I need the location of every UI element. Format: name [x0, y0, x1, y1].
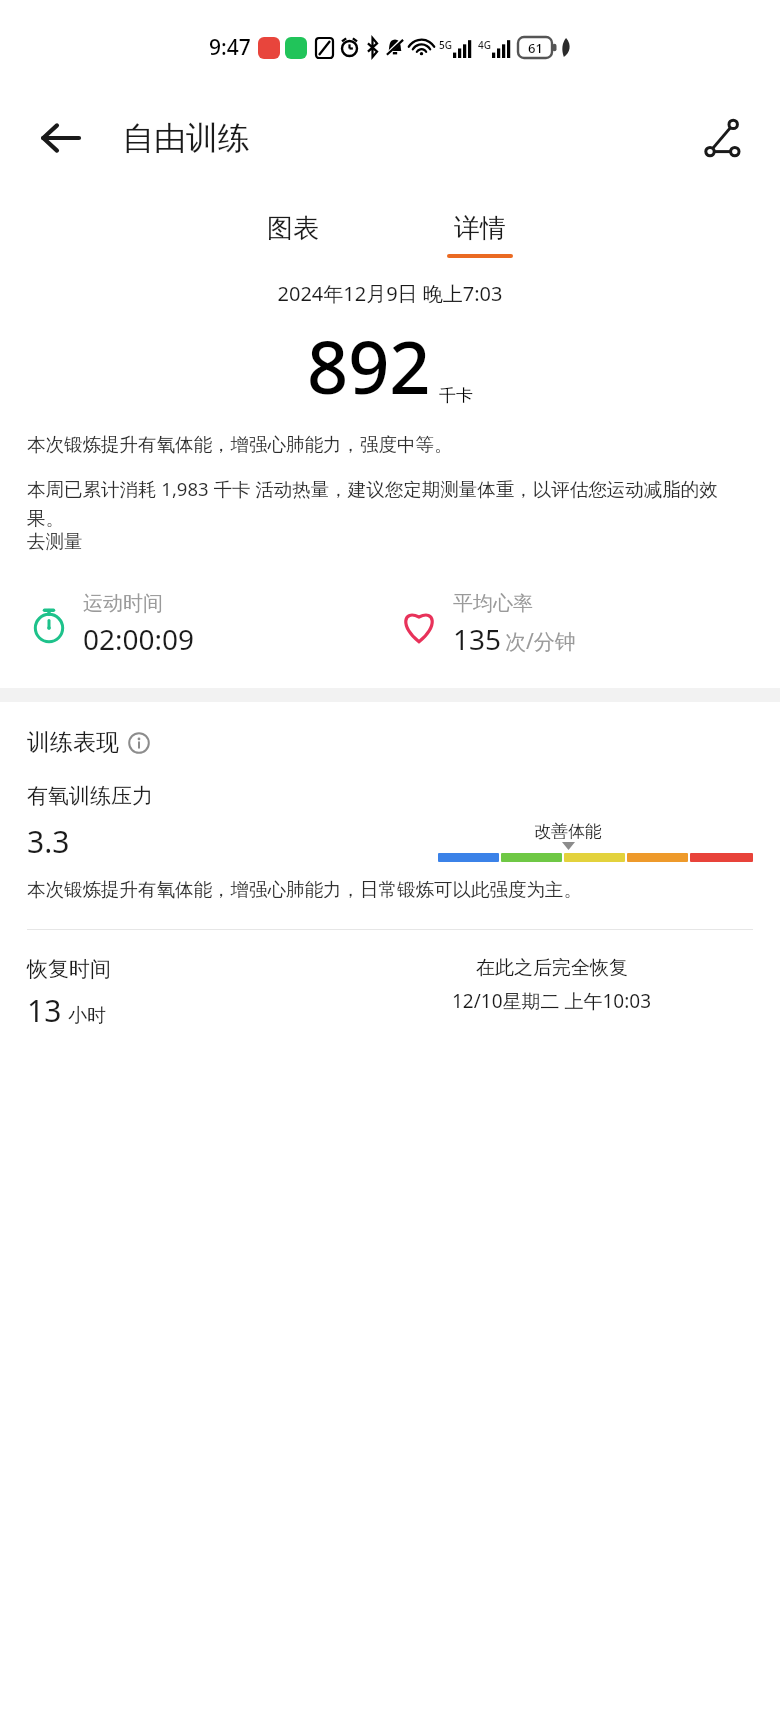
staticText: 恢复时间 — [27, 956, 111, 982]
staticText: 小时 — [68, 1004, 106, 1028]
staticText: 892 — [307, 317, 431, 415]
staticText: 千卡 — [439, 385, 473, 406]
button[interactable]: 图表 — [267, 212, 319, 245]
button[interactable]: 详情 — [447, 212, 513, 258]
button[interactable]: 分享 — [696, 112, 748, 164]
staticText: 4G — [478, 38, 491, 52]
staticText: 3.3 — [27, 821, 70, 862]
staticText: 5G — [439, 38, 452, 52]
button[interactable]: 去测量 — [27, 530, 83, 553]
staticText: 次/分钟 — [505, 627, 576, 656]
staticText: 详情 — [454, 212, 506, 245]
staticText: 有氧训练压力 — [27, 783, 153, 809]
staticText: 平均心率 — [453, 591, 533, 616]
staticText: 在此之后完全恢复 — [476, 956, 628, 980]
staticText: 自由训练 — [122, 118, 250, 158]
staticText: 2024年12月9日 晚上7:03 — [0, 280, 780, 307]
button[interactable]: 返回 — [36, 114, 84, 162]
staticText: 图表 — [267, 212, 319, 245]
staticText: 13 — [27, 990, 62, 1031]
staticText: 本次锻炼提升有氧体能，增强心肺能力，强度中等。 — [27, 433, 753, 456]
button[interactable]: 说明 — [128, 732, 150, 754]
staticText: 本周已累计消耗 1,983 千卡 活动热量，建议您定期测量体重，以评估您运动减脂… — [27, 476, 753, 530]
button[interactable]: 平均心率 — [397, 591, 768, 658]
staticText: 135 — [453, 620, 502, 658]
staticText: 12/10星期二 上午10:03 — [452, 988, 652, 1014]
staticText: 9:47 — [209, 33, 251, 62]
staticText: 训练表现 — [27, 728, 119, 757]
staticText: 运动时间 — [83, 591, 163, 616]
staticText: 61 — [528, 39, 543, 57]
staticText: 02:00:09 — [83, 620, 195, 658]
staticText: 本次锻炼提升有氧体能，增强心肺能力，日常锻炼可以此强度为主。 — [27, 878, 753, 901]
staticText: 改善体能 — [534, 821, 602, 842]
button[interactable]: 运动时间 — [27, 591, 397, 658]
